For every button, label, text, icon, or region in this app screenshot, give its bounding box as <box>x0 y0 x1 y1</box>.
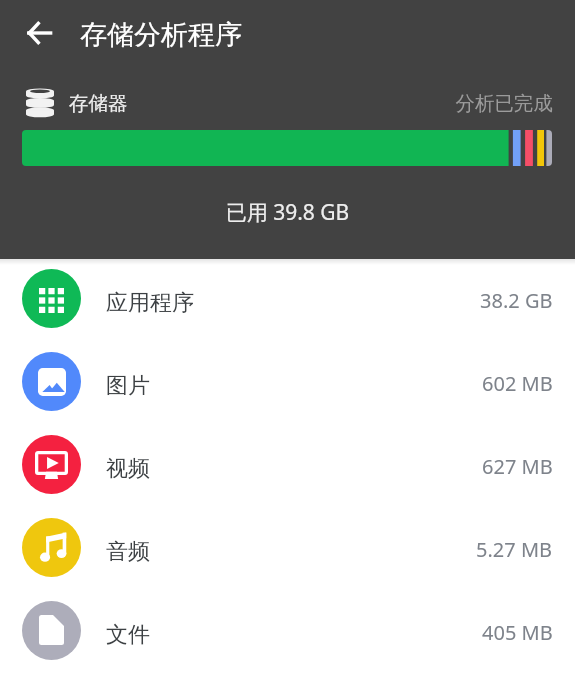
staticText: 已用 39.8 GB <box>0 198 575 227</box>
button[interactable]: Back <box>13 7 65 59</box>
staticText: 分析已完成 <box>0 91 553 116</box>
staticText: 5.27 MB <box>476 536 553 563</box>
staticText: 图片 <box>106 372 150 400</box>
staticText: 视频 <box>106 455 150 483</box>
button[interactable]: 音频 <box>0 506 575 589</box>
staticText: 存储器 <box>69 91 128 116</box>
staticText: 38.2 GB <box>480 287 553 314</box>
staticText: 文件 <box>106 621 150 649</box>
staticText: 音频 <box>106 538 150 566</box>
staticText: 602 MB <box>482 370 553 397</box>
staticText: 627 MB <box>482 453 553 480</box>
staticText: 405 MB <box>482 619 553 646</box>
button[interactable]: 视频 <box>0 423 575 506</box>
button[interactable]: 图片 <box>0 340 575 423</box>
button[interactable]: 文件 <box>0 589 575 672</box>
staticText: 应用程序 <box>106 289 194 317</box>
button[interactable]: 应用程序 <box>0 257 575 340</box>
staticText: 存储分析程序 <box>80 18 242 52</box>
